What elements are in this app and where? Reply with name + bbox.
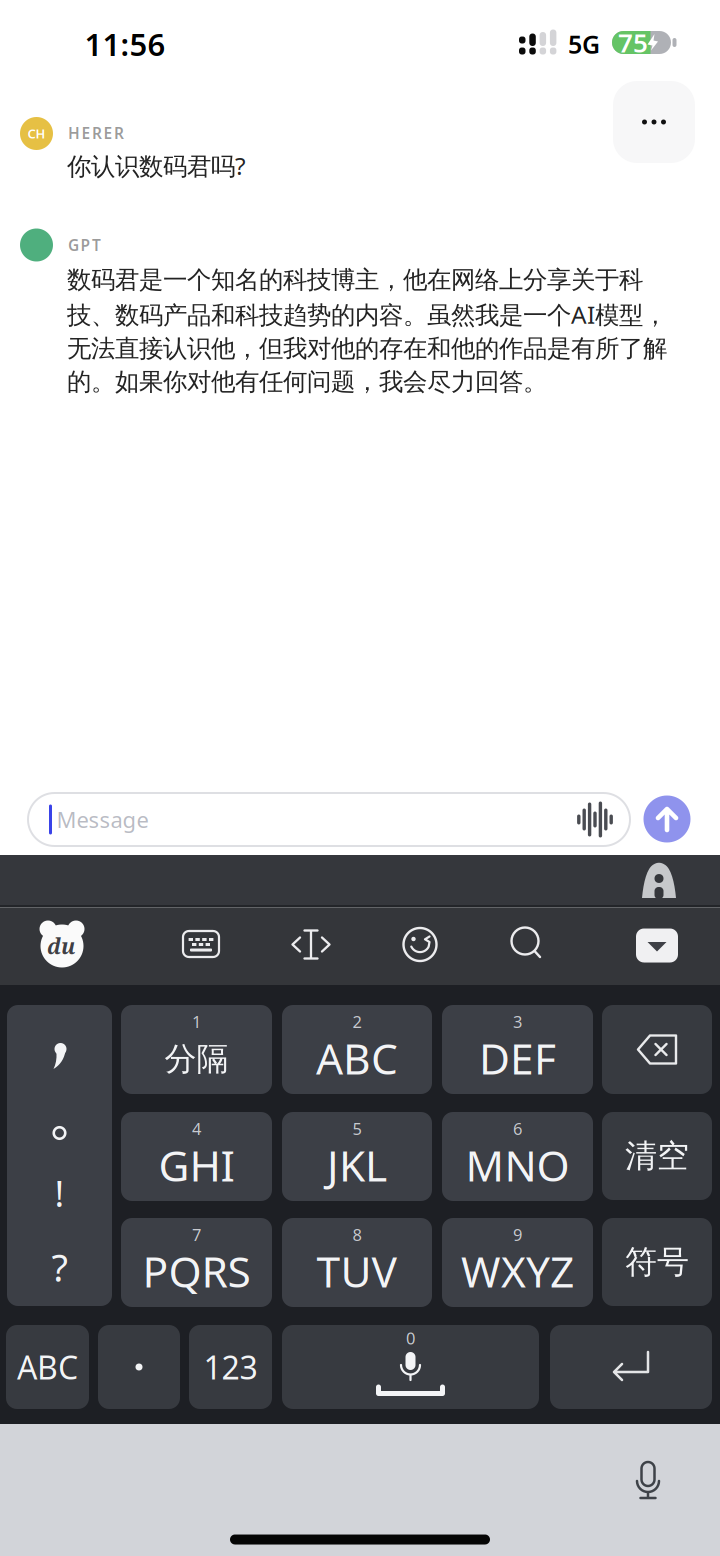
button[interactable]: 6: [442, 1112, 593, 1201]
staticText: 9: [513, 1223, 522, 1246]
staticText: 你认识数码君吗?: [67, 149, 246, 182]
staticText: 123: [203, 1345, 257, 1389]
staticText: 5: [352, 1117, 361, 1140]
button[interactable]: [497, 914, 557, 974]
staticText: ?: [51, 1241, 67, 1293]
staticText: 数码君是一个知名的科技博主，他在网络上分享关于科 技、数码产品和科技趋势的内容。…: [67, 264, 667, 397]
staticText: !: [54, 1168, 64, 1217]
staticText: 7: [192, 1223, 201, 1246]
staticText: DEF: [479, 1029, 556, 1087]
button[interactable]: 8: [282, 1218, 432, 1307]
button[interactable]: [643, 795, 690, 842]
button[interactable]: [281, 914, 341, 974]
button[interactable]: 5: [282, 1112, 432, 1201]
staticText: HERER: [68, 122, 124, 144]
staticText: 8: [352, 1223, 361, 1246]
button[interactable]: [390, 914, 450, 974]
staticText: JKL: [327, 1136, 387, 1194]
staticText: 符号: [625, 1242, 689, 1282]
button[interactable]: 1: [121, 1005, 272, 1094]
button[interactable]: [550, 1325, 712, 1409]
staticText: 11:56: [84, 23, 165, 65]
button[interactable]: du: [32, 915, 92, 975]
staticText: 5G: [568, 27, 600, 61]
button[interactable]: 7: [121, 1218, 272, 1307]
staticText: 1: [192, 1010, 201, 1033]
staticText: 4: [192, 1117, 201, 1140]
button[interactable]: 4: [121, 1112, 272, 1201]
button[interactable]: [627, 915, 687, 975]
staticText: ABC: [316, 1029, 398, 1087]
staticText: 75: [618, 25, 648, 60]
staticText: ABC: [17, 1345, 78, 1389]
button[interactable]: ABC: [6, 1325, 89, 1409]
staticText: PQRS: [142, 1242, 250, 1300]
button[interactable]: [98, 1325, 180, 1409]
staticText: 分隔: [164, 1039, 228, 1079]
staticText: MNO: [465, 1136, 569, 1194]
button[interactable]: !: [7, 1005, 112, 1306]
staticText: 2: [352, 1010, 361, 1033]
staticText: 3: [513, 1010, 522, 1033]
staticText: 清空: [625, 1136, 689, 1176]
button[interactable]: 9: [442, 1218, 593, 1307]
staticText: CH: [27, 125, 45, 142]
button[interactable]: [613, 81, 695, 163]
staticText: du: [47, 931, 75, 961]
button[interactable]: [602, 1005, 712, 1094]
button[interactable]: 123: [189, 1325, 272, 1409]
button[interactable]: 0: [282, 1325, 539, 1409]
staticText: 0: [406, 1327, 415, 1349]
button[interactable]: 符号: [602, 1218, 712, 1306]
staticText: Message: [56, 804, 148, 834]
staticText: WXYZ: [461, 1242, 574, 1300]
staticText: GPT: [68, 234, 101, 256]
button[interactable]: [171, 914, 231, 974]
staticText: TUV: [316, 1242, 397, 1300]
staticText: GHI: [158, 1136, 234, 1194]
button[interactable]: [613, 1448, 683, 1518]
button[interactable]: 3: [442, 1005, 593, 1094]
staticText: 6: [513, 1117, 522, 1140]
button[interactable]: 2: [282, 1005, 432, 1094]
button[interactable]: 清空: [602, 1112, 712, 1200]
button[interactable]: Message: [28, 793, 630, 846]
